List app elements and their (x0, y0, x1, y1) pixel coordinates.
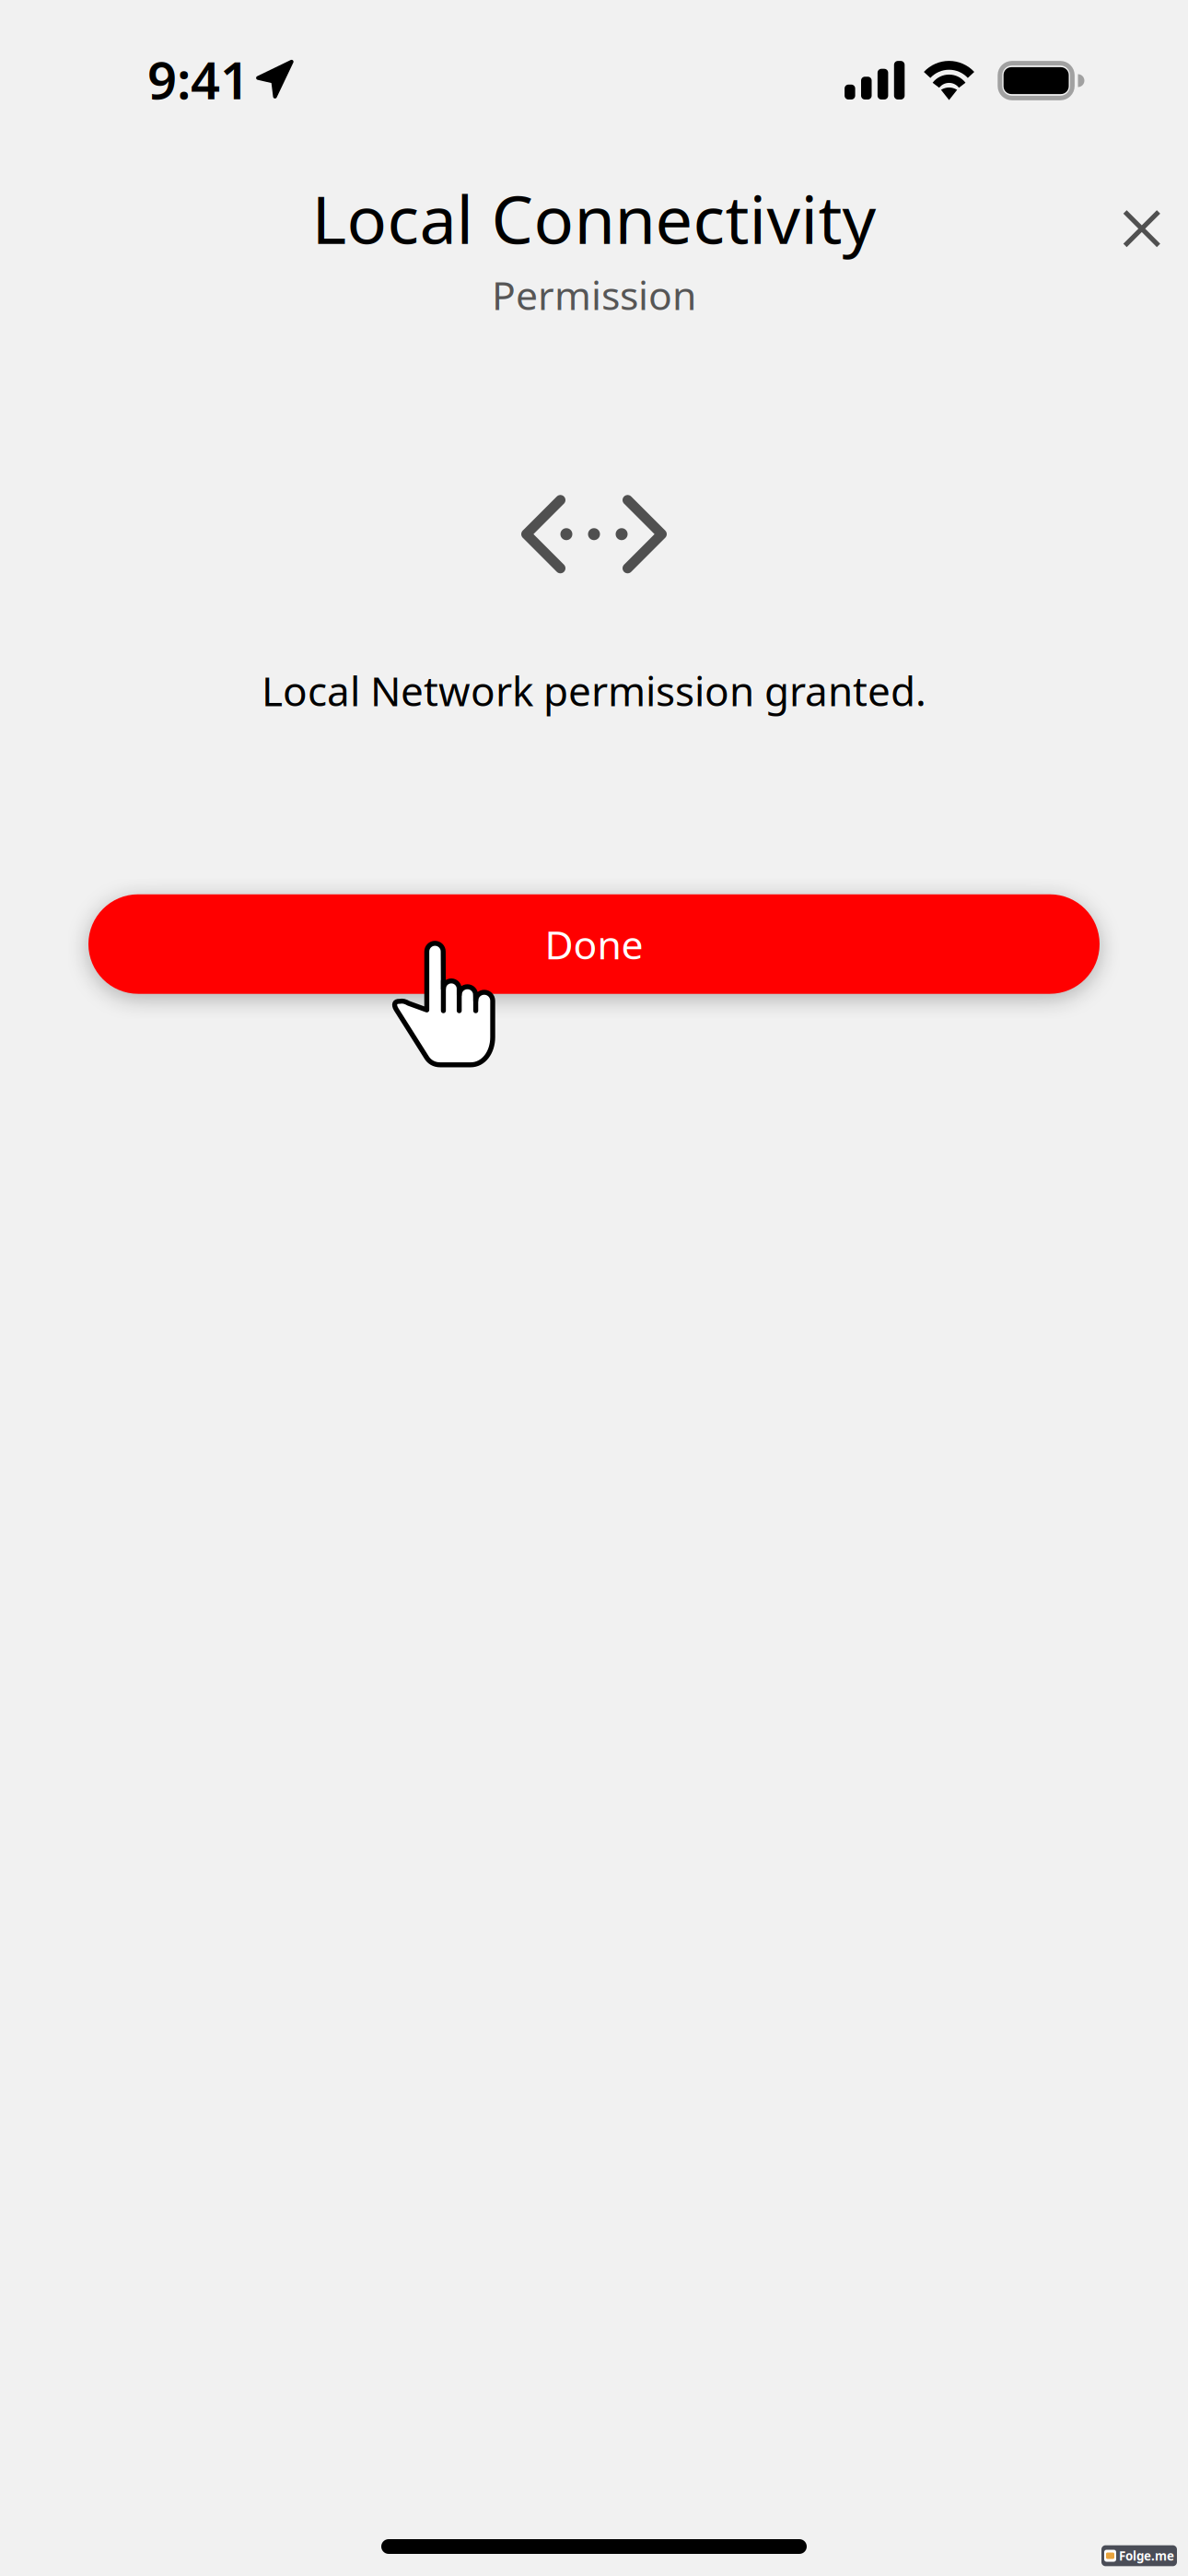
button[interactable]: Close (1101, 188, 1182, 269)
staticText: Permission (492, 269, 696, 321)
button[interactable]: Done (88, 894, 1100, 994)
staticText: 9:41 (147, 45, 250, 114)
staticText: Done (545, 918, 643, 970)
staticText: Local Network permission granted. (262, 664, 926, 717)
staticText: Local Connectivity (312, 174, 876, 262)
staticText: Folge.me (1119, 2548, 1174, 2564)
